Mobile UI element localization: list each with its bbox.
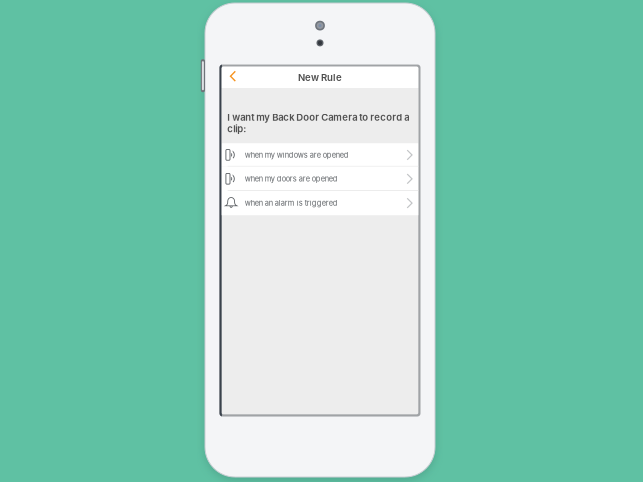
staticText: New Rule bbox=[298, 72, 342, 83]
staticText: when an alarm is triggered bbox=[245, 199, 338, 208]
button[interactable]: when my windows are opened bbox=[222, 143, 418, 167]
button[interactable]: Back bbox=[222, 67, 244, 88]
staticText: when my doors are opened bbox=[245, 174, 338, 183]
button[interactable]: when an alarm is triggered bbox=[222, 191, 418, 215]
staticText: when my windows are opened bbox=[245, 150, 349, 159]
button[interactable]: when my doors are opened bbox=[222, 167, 418, 191]
staticText: I want my Back Door Camera to record a c… bbox=[227, 112, 409, 134]
